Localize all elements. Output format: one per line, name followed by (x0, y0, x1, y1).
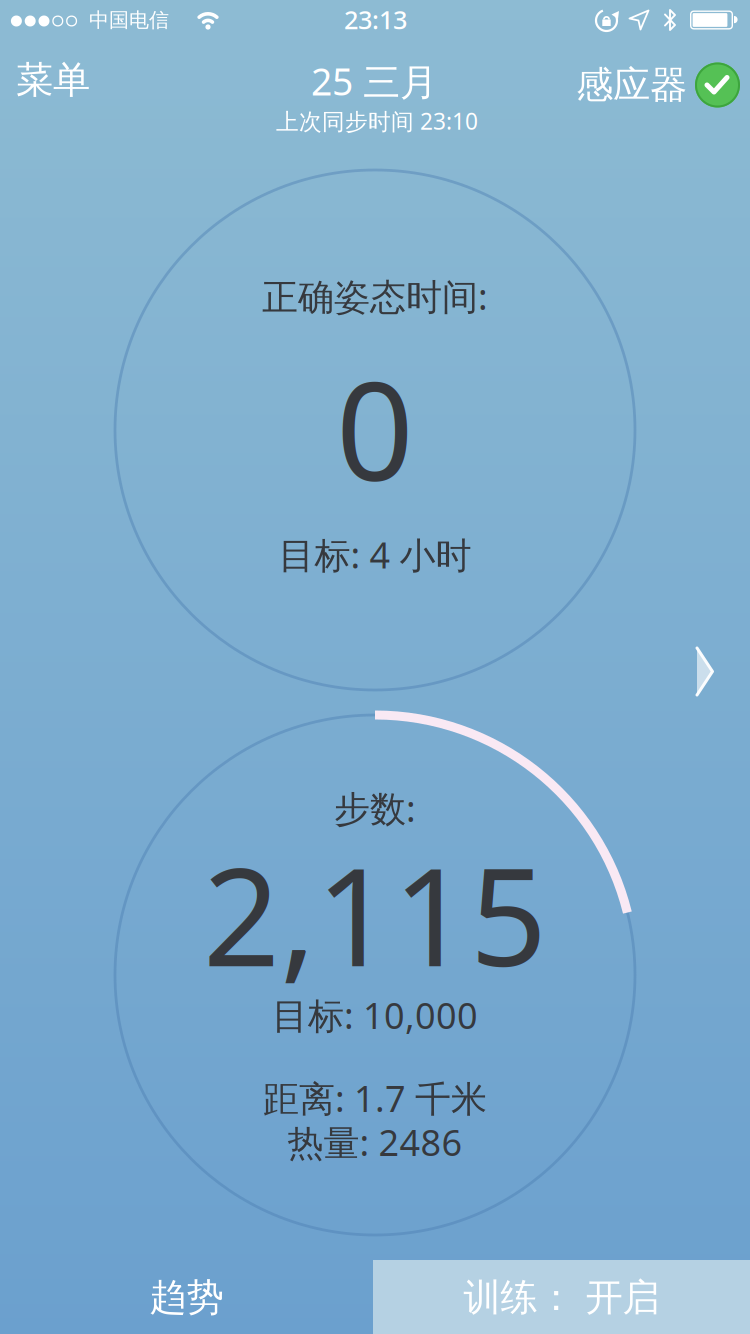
staticText: 目标: 10,000 (272, 991, 478, 1039)
staticText: 目标: 4 小时 (278, 531, 471, 578)
button[interactable]: 训练： 开启 (373, 1260, 750, 1334)
button[interactable]: 菜单 (16, 57, 90, 103)
staticText: 正确姿态时间: (262, 272, 488, 320)
button[interactable]: 下一页 (695, 646, 714, 696)
button[interactable]: 趋势 (0, 1260, 373, 1334)
staticText: 步数: (334, 784, 416, 832)
staticText: 0 (336, 338, 414, 518)
staticText: 菜单 (16, 57, 90, 103)
staticText: 感应器 (576, 62, 687, 108)
button[interactable]: 感应器 (576, 62, 740, 108)
staticText: 热量: 2486 (287, 1118, 462, 1166)
staticText: 上次同步时间 23:10 (276, 106, 478, 136)
staticText: 25 三月 (311, 56, 437, 106)
staticText: 趋势 (149, 1275, 223, 1320)
staticText: 距离: 1.7 千米 (263, 1074, 487, 1122)
staticText: 中国电信 (89, 8, 169, 32)
staticText: 23:13 (344, 3, 407, 36)
staticText: 2,115 (203, 825, 547, 1003)
staticText: 训练： 开启 (463, 1275, 659, 1320)
